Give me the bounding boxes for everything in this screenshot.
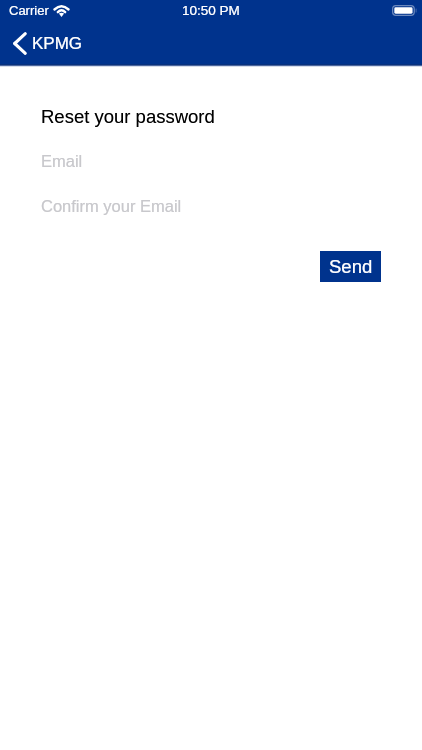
button[interactable]: Back to KPMG [0,22,95,64]
staticText: Reset your password [41,106,215,127]
staticText: KPMG [32,34,83,53]
staticText: Carrier [9,3,49,18]
other: Wi-Fi signal [54,5,69,17]
staticText: Email [41,152,83,170]
staticText: Send [329,256,373,277]
staticText: 10:50 PM [182,3,240,18]
button[interactable]: Send [320,251,381,282]
button[interactable]: Email [0,142,422,180]
other: Battery full [392,5,417,16]
button[interactable]: Confirm your Email [0,187,422,225]
staticText: Reset your password [41,106,215,127]
staticText: Confirm your Email [41,197,182,215]
